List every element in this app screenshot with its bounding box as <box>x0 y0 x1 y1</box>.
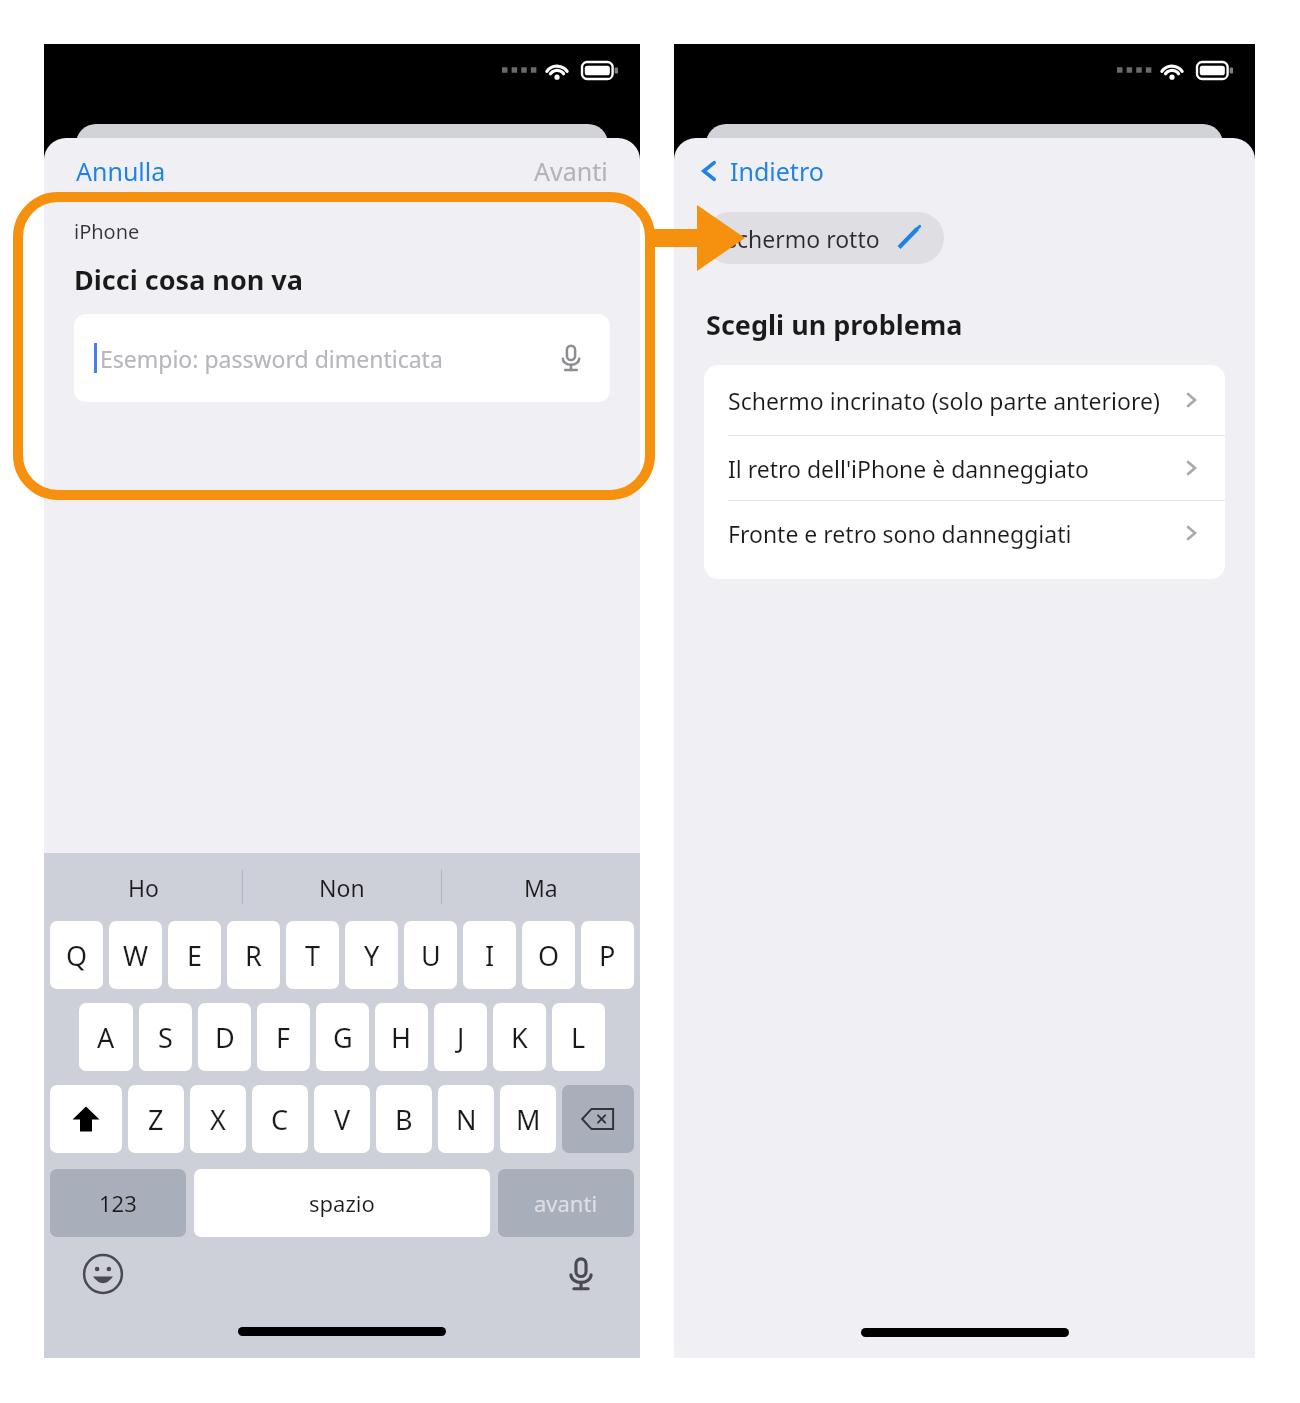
button[interactable]: R <box>227 921 280 989</box>
staticText: D <box>215 1019 235 1056</box>
button[interactable]: L <box>552 1003 605 1071</box>
button[interactable]: Dettatura <box>560 1253 602 1295</box>
button[interactable]: Indietro <box>674 138 1255 204</box>
button[interactable]: avanti <box>498 1169 634 1237</box>
button[interactable]: T <box>286 921 339 989</box>
button[interactable]: B <box>376 1085 432 1153</box>
staticText: Annulla <box>76 154 166 188</box>
button[interactable]: Esempio: password dimenticata <box>74 314 610 402</box>
button[interactable]: O <box>522 921 575 989</box>
staticText: X <box>210 1101 226 1138</box>
staticText: M <box>516 1101 541 1138</box>
staticText: Scegli un problema <box>706 306 963 343</box>
staticText: Ma <box>524 872 558 903</box>
button[interactable]: I <box>463 921 516 989</box>
staticText: Non <box>319 872 365 903</box>
button[interactable]: Q <box>50 921 103 989</box>
staticText: R <box>245 937 262 974</box>
staticText: T <box>305 937 321 974</box>
staticText: I <box>485 937 495 974</box>
staticText: O <box>538 937 560 974</box>
staticText: Il retro dell'iPhone è danneggiato <box>728 453 1090 484</box>
staticText: Indietro <box>730 154 824 188</box>
staticText: 123 <box>99 1188 137 1218</box>
staticText: N <box>456 1101 477 1138</box>
button[interactable]: Maiuscole <box>50 1085 122 1153</box>
button[interactable]: E <box>168 921 221 989</box>
button[interactable]: U <box>404 921 457 989</box>
staticText: L <box>571 1019 586 1056</box>
button[interactable]: Backspace <box>562 1085 634 1153</box>
button[interactable]: Ma <box>442 853 640 921</box>
button[interactable]: Annulla <box>72 150 170 192</box>
staticText: G <box>333 1019 353 1056</box>
staticText: Dicci cosa non va <box>74 261 303 298</box>
staticText: Fronte e retro sono danneggiati <box>728 518 1072 549</box>
button[interactable]: Dettatura <box>554 341 588 375</box>
button[interactable]: D <box>198 1003 251 1071</box>
button[interactable]: V <box>314 1085 370 1153</box>
button[interactable]: Z <box>128 1085 184 1153</box>
staticText: A <box>97 1019 115 1056</box>
staticText: W <box>123 937 149 974</box>
staticText: Schermo incrinato (solo parte anteriore) <box>728 385 1160 416</box>
staticText: S <box>158 1019 173 1056</box>
staticText: F <box>276 1019 291 1056</box>
staticText: Q <box>66 937 88 974</box>
staticText: spazio <box>309 1188 375 1218</box>
button[interactable]: Emoji <box>82 1253 124 1295</box>
button[interactable]: Ho <box>44 853 242 921</box>
button[interactable]: spazio <box>194 1169 490 1237</box>
button[interactable]: M <box>500 1085 556 1153</box>
button[interactable]: K <box>493 1003 546 1071</box>
button[interactable]: S <box>139 1003 192 1071</box>
staticText: schermo rotto <box>726 223 880 254</box>
staticText: Z <box>148 1101 164 1138</box>
button[interactable]: Avanti <box>530 150 612 192</box>
button[interactable]: Y <box>345 921 398 989</box>
button[interactable]: F <box>257 1003 310 1071</box>
staticText: H <box>391 1019 412 1056</box>
button[interactable]: schermo rotto <box>704 212 944 264</box>
staticText: Avanti <box>534 154 608 188</box>
button[interactable]: J <box>434 1003 487 1071</box>
button[interactable]: G <box>316 1003 369 1071</box>
staticText: K <box>511 1019 528 1056</box>
staticText: E <box>187 937 203 974</box>
staticText: C <box>271 1101 289 1138</box>
staticText: avanti <box>534 1188 598 1218</box>
button[interactable]: P <box>581 921 634 989</box>
staticText: V <box>334 1101 351 1138</box>
button[interactable]: 123 <box>50 1169 186 1237</box>
button[interactable]: H <box>375 1003 428 1071</box>
staticText: Y <box>364 937 380 974</box>
button[interactable]: Non <box>243 853 441 921</box>
button[interactable]: Il retro dell'iPhone è danneggiato <box>704 436 1225 500</box>
button[interactable]: Schermo incrinato (solo parte anteriore) <box>704 365 1225 435</box>
button[interactable]: C <box>252 1085 308 1153</box>
staticText: U <box>421 937 441 974</box>
button[interactable]: X <box>190 1085 246 1153</box>
staticText: iPhone <box>74 218 140 245</box>
staticText: Ho <box>128 872 159 903</box>
button[interactable]: Fronte e retro sono danneggiati <box>704 501 1225 565</box>
staticText: Esempio: password dimenticata <box>100 343 443 374</box>
button[interactable]: W <box>109 921 162 989</box>
button[interactable]: N <box>438 1085 494 1153</box>
staticText: J <box>457 1019 465 1056</box>
button[interactable]: A <box>79 1003 133 1071</box>
staticText: P <box>599 937 616 974</box>
staticText: B <box>395 1101 413 1138</box>
